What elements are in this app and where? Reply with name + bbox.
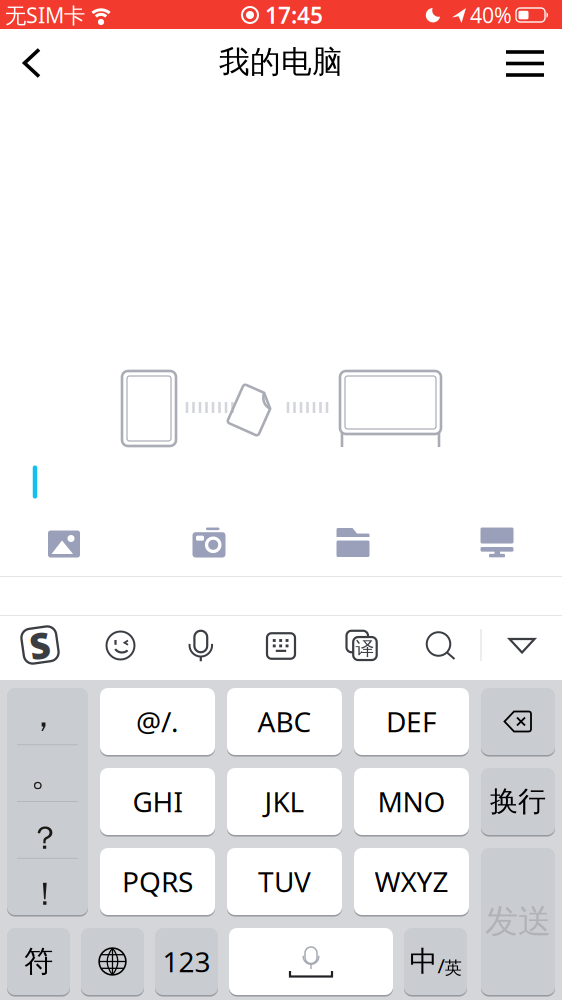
button[interactable]: TUV <box>227 848 342 915</box>
button[interactable]: 中英文切换 <box>404 928 467 995</box>
button[interactable]: JKL <box>227 768 342 835</box>
button[interactable]: 空格 <box>229 928 393 995</box>
button[interactable]: 相册 <box>48 530 80 557</box>
staticText: @/. <box>136 703 179 740</box>
button[interactable]: WXYZ <box>354 848 469 915</box>
button[interactable]: 我的电脑 <box>480 527 513 557</box>
button[interactable]: 键盘 <box>266 632 296 660</box>
button[interactable]: 发送 <box>481 848 555 995</box>
button[interactable]: 符 <box>7 928 70 995</box>
staticText: ？ <box>29 818 61 858</box>
button[interactable]: 菜单 <box>503 42 547 84</box>
staticText: 123 <box>162 943 210 980</box>
button[interactable]: DEF <box>354 688 469 755</box>
staticText: GHI <box>132 783 182 820</box>
button[interactable]: 删除 <box>481 688 555 755</box>
button[interactable]: 收起键盘 <box>506 635 538 656</box>
staticText: WXYZ <box>374 863 448 900</box>
staticText: 英 <box>444 957 461 979</box>
staticText: ABC <box>257 703 311 740</box>
staticText: 译 <box>355 637 374 660</box>
button[interactable]: 搜狗输入法 <box>18 623 62 667</box>
button[interactable]: 换行 <box>481 768 555 835</box>
staticText: MNO <box>377 783 445 820</box>
button[interactable]: 返回 <box>11 41 55 85</box>
staticText: PQRS <box>122 863 193 900</box>
staticText: 17:45 <box>265 0 323 30</box>
staticText: 我的电脑 <box>219 43 343 81</box>
staticText: 无SIM卡 <box>5 1 85 29</box>
staticText: 40% <box>470 1 512 29</box>
staticText: 符 <box>24 943 53 979</box>
button[interactable]: PQRS <box>100 848 215 915</box>
button[interactable]: 文件 <box>336 528 369 557</box>
button[interactable]: ， <box>7 688 88 915</box>
button[interactable]: 123 <box>155 928 218 995</box>
button[interactable]: 表情 <box>105 630 135 660</box>
staticText: TUV <box>258 863 311 900</box>
button[interactable]: ABC <box>227 688 342 755</box>
staticText: 中 <box>409 944 437 979</box>
staticText: ， <box>26 694 61 736</box>
staticText: 。 <box>30 753 65 795</box>
button[interactable]: @/. <box>100 688 215 755</box>
button[interactable]: 切换输入法 <box>81 928 144 995</box>
staticText: S <box>29 621 50 669</box>
button[interactable]: MNO <box>354 768 469 835</box>
button[interactable]: 搜索 <box>426 631 455 659</box>
staticText: 发送 <box>485 901 551 942</box>
staticText: ！ <box>29 874 61 914</box>
button[interactable]: 翻译 <box>345 630 377 661</box>
button[interactable]: GHI <box>100 768 215 835</box>
staticText: 换行 <box>490 784 546 819</box>
staticText: JKL <box>264 783 304 820</box>
button[interactable]: 语音 <box>189 630 212 662</box>
staticText: / <box>437 952 444 979</box>
staticText: DEF <box>386 703 437 740</box>
button[interactable]: 拍摄 <box>192 527 225 557</box>
